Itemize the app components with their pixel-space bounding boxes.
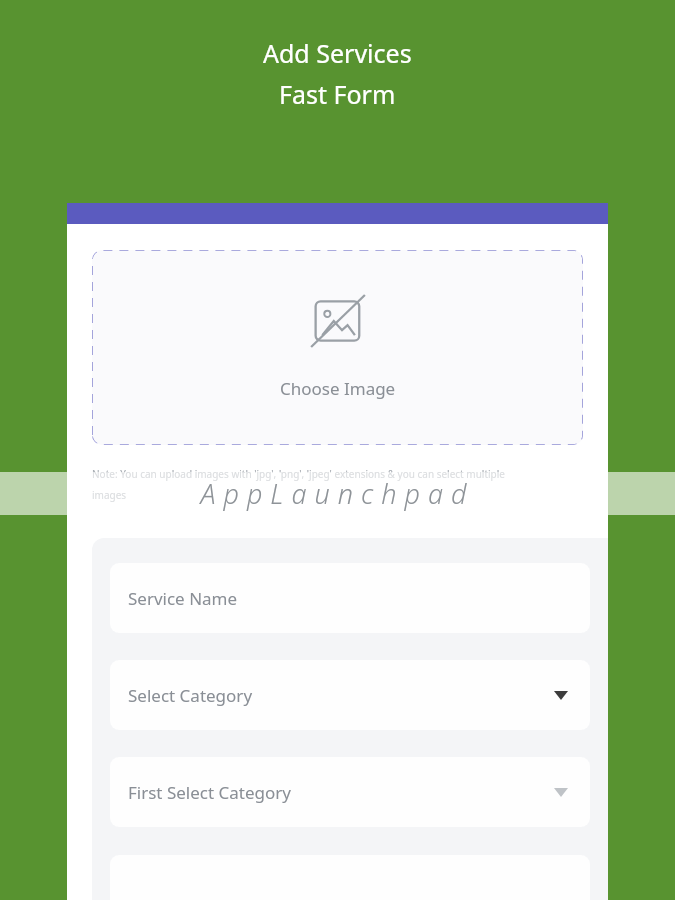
button[interactable]: Service Name (110, 563, 590, 633)
button[interactable]: First Select Category (110, 757, 590, 827)
staticText: Fast Form (279, 77, 396, 111)
staticText: Note: You can upload images with 'jpg', … (92, 467, 505, 481)
staticText: First Select Category (128, 781, 291, 804)
staticText: Service Name (128, 587, 238, 610)
staticText: images (92, 488, 127, 502)
button[interactable]: Choose Image (92, 250, 583, 445)
staticText: Choose Image (280, 377, 396, 400)
staticText: AppLaunchpad (200, 475, 475, 512)
button[interactable]: Select Category (110, 660, 590, 730)
staticText: Select Category (128, 684, 253, 707)
staticText: Add Services (263, 36, 412, 70)
